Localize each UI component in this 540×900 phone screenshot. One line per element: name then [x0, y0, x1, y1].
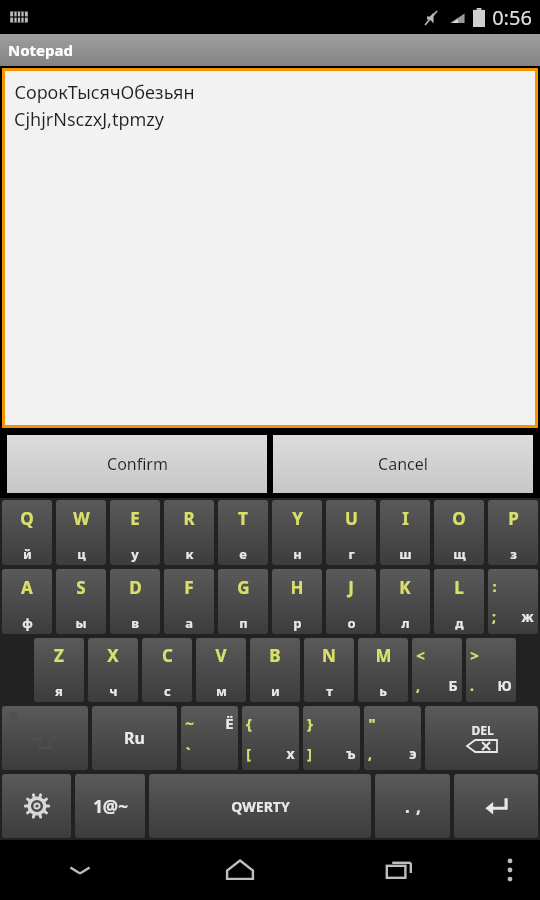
staticText: у [131, 545, 139, 563]
button[interactable]: Z [34, 638, 84, 702]
button[interactable]: QWERTY [149, 774, 371, 838]
button[interactable]: E [110, 500, 160, 565]
button[interactable]: Ru [92, 706, 177, 770]
staticText: < [416, 645, 425, 665]
staticText: е [239, 545, 247, 563]
staticText: . [470, 676, 474, 695]
button[interactable]: W [56, 500, 106, 565]
button[interactable]: R [164, 500, 214, 565]
button[interactable]: Confirm [7, 435, 267, 493]
staticText: Y [292, 507, 303, 530]
button[interactable]: H [272, 569, 322, 634]
button[interactable]: " [364, 706, 421, 770]
button[interactable]: O [434, 500, 484, 565]
button[interactable]: 1@~ [75, 774, 145, 838]
button[interactable]: B [250, 638, 300, 702]
staticText: Confirm [107, 453, 168, 475]
staticText: о [347, 614, 356, 632]
staticText: в [131, 614, 139, 632]
staticText: л [401, 614, 410, 632]
staticText: ] [307, 744, 312, 763]
staticText: н [293, 545, 302, 563]
button[interactable]: Y [272, 500, 322, 565]
staticText: A [21, 576, 33, 599]
staticText: ъ [346, 744, 356, 763]
button[interactable]: } [303, 706, 360, 770]
staticText: СорокТысячОбезьян [14, 80, 195, 105]
staticText: Notepad [8, 40, 73, 60]
staticText: ы [75, 614, 87, 632]
staticText: U [345, 507, 358, 530]
staticText: I [402, 507, 409, 530]
staticText: п [239, 614, 248, 632]
staticText: ц [77, 545, 86, 563]
button[interactable]: F [164, 569, 214, 634]
staticText: DEL [471, 722, 494, 738]
button[interactable]: ~ [181, 706, 238, 770]
staticText: J [348, 576, 354, 599]
button[interactable]: { [242, 706, 299, 770]
staticText: г [348, 545, 355, 563]
staticText: щ [453, 545, 466, 563]
button[interactable]: A [2, 569, 52, 634]
button[interactable]: G [218, 569, 268, 634]
staticText: Z [54, 644, 64, 667]
button[interactable]: S [56, 569, 106, 634]
staticText: Ё [225, 713, 234, 733]
button[interactable]: D [110, 569, 160, 634]
button[interactable]: N [304, 638, 354, 702]
staticText: ~ [185, 713, 194, 733]
staticText: ф [22, 614, 33, 632]
button[interactable]: < [412, 638, 462, 702]
button[interactable]: Hide keyboard [0, 840, 160, 900]
staticText: Cancel [378, 453, 428, 475]
staticText: CjhjrNsczxJ,tpmzy [14, 107, 164, 132]
staticText: T [238, 507, 248, 530]
staticText: ; [492, 607, 496, 626]
button[interactable]: . [375, 774, 450, 838]
staticText: э [409, 744, 417, 763]
staticText: з [510, 545, 517, 563]
staticText: P [508, 507, 519, 530]
staticText: { [246, 713, 252, 733]
staticText: х [286, 744, 295, 763]
staticText: [ [246, 744, 251, 763]
button[interactable]: J [326, 569, 376, 634]
staticText: р [293, 614, 302, 632]
staticText: M [375, 644, 392, 667]
button[interactable]: Home [160, 840, 320, 900]
button[interactable]: U [326, 500, 376, 565]
staticText: W [73, 507, 90, 530]
staticText: д [455, 614, 464, 632]
button[interactable]: Recents [320, 840, 480, 900]
button[interactable]: Delete [425, 706, 538, 770]
button[interactable]: T [218, 500, 268, 565]
staticText: . [405, 795, 410, 818]
staticText: Q [20, 507, 34, 530]
button[interactable]: СорокТысячОбезьян [14, 80, 538, 428]
button[interactable]: L [434, 569, 484, 634]
button[interactable]: V [196, 638, 246, 702]
button[interactable]: P [488, 500, 538, 565]
button[interactable]: M [358, 638, 408, 702]
staticText: V [215, 644, 227, 667]
staticText: } [307, 713, 313, 733]
button[interactable]: C [142, 638, 192, 702]
button[interactable]: : [488, 569, 538, 634]
button[interactable]: X [88, 638, 138, 702]
staticText: D [129, 576, 142, 599]
button[interactable]: Settings [2, 774, 71, 838]
staticText: H [290, 576, 304, 599]
button[interactable]: > [466, 638, 516, 702]
staticText: B [269, 644, 281, 667]
staticText: ь [379, 682, 387, 700]
button[interactable]: Q [2, 500, 52, 565]
button[interactable]: Cancel [273, 435, 533, 493]
button[interactable]: Enter [454, 774, 538, 838]
button[interactable]: Shift [2, 706, 88, 770]
button[interactable]: K [380, 569, 430, 634]
button[interactable]: More options [480, 840, 540, 900]
staticText: й [23, 545, 32, 563]
button[interactable]: I [380, 500, 430, 565]
staticText: E [130, 507, 140, 530]
